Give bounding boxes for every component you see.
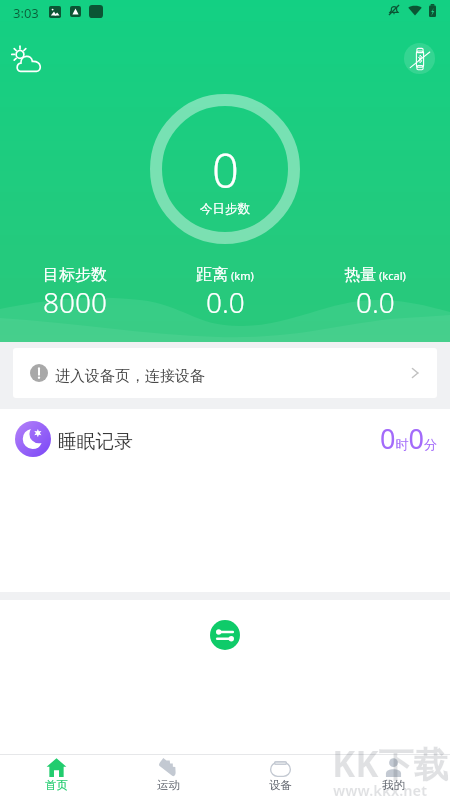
staticText: 首页	[45, 778, 68, 792]
button[interactable]: Device not connected	[404, 43, 435, 74]
button[interactable]: Settings	[210, 620, 240, 650]
staticText: 设备	[269, 778, 292, 792]
button[interactable]: 进入设备页，连接设备	[13, 348, 437, 398]
staticText: 睡眠记录	[58, 430, 133, 454]
staticText: 0.0	[356, 283, 395, 321]
button[interactable]: 我的	[337, 755, 450, 800]
staticText: 进入设备页，连接设备	[55, 367, 205, 386]
staticText: 0	[212, 138, 239, 202]
staticText: 8000	[43, 283, 107, 321]
staticText: 距离 (km)	[196, 265, 254, 285]
staticText: www.kkx.net	[333, 781, 428, 800]
button[interactable]: 设备	[224, 755, 337, 800]
staticText: 0.0	[206, 283, 245, 321]
staticText: 目标步数	[43, 265, 107, 285]
button[interactable]: Weather	[8, 42, 48, 82]
staticText: 热量 (kcal)	[344, 265, 406, 285]
button[interactable]: 运动	[112, 755, 224, 800]
staticText: 3:03	[13, 4, 39, 22]
staticText: 今日步数	[200, 201, 250, 217]
staticText: 运动	[157, 778, 180, 792]
staticText: KK下载	[332, 740, 449, 788]
staticText: 0时0分	[380, 420, 437, 457]
button[interactable]: 睡眠记录	[0, 409, 450, 592]
button[interactable]: 首页	[0, 755, 112, 800]
staticText: 我的	[382, 778, 405, 792]
